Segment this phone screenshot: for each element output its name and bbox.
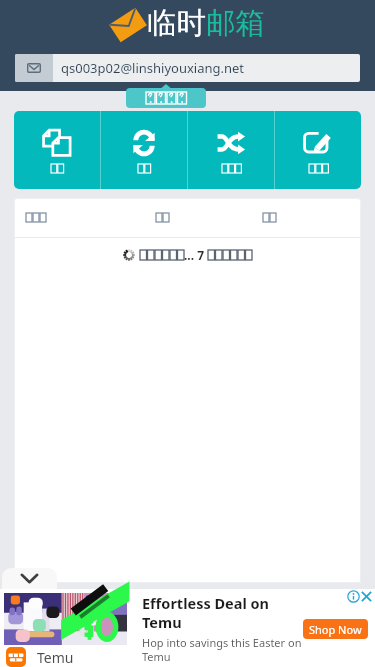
button[interactable]: Close ad	[361, 591, 372, 602]
button[interactable]: Ad info	[347, 590, 360, 603]
button[interactable]: Refresh inbox	[101, 111, 187, 189]
staticText: ... 7	[184, 247, 208, 263]
staticText: Temu	[37, 648, 74, 667]
button[interactable]: Shop Now	[303, 619, 368, 639]
staticText: 临时	[147, 5, 206, 42]
staticText: 邮箱	[206, 5, 265, 42]
staticText: Hop into savings this Easter on Temu	[142, 635, 302, 664]
button[interactable]: qs003p02@linshiyouxiang.net	[15, 54, 360, 82]
staticText: Shop Now	[309, 622, 362, 637]
button[interactable]: Copy email address	[14, 111, 100, 189]
button[interactable]: Change address	[188, 111, 274, 189]
staticText: Effortless Deal on Temu	[142, 593, 302, 632]
button[interactable]	[126, 88, 206, 108]
button[interactable]: Customize address	[275, 111, 361, 189]
button[interactable]: Collapse ad	[2, 568, 57, 589]
staticText: qs003p02@linshiyouxiang.net	[61, 59, 245, 77]
